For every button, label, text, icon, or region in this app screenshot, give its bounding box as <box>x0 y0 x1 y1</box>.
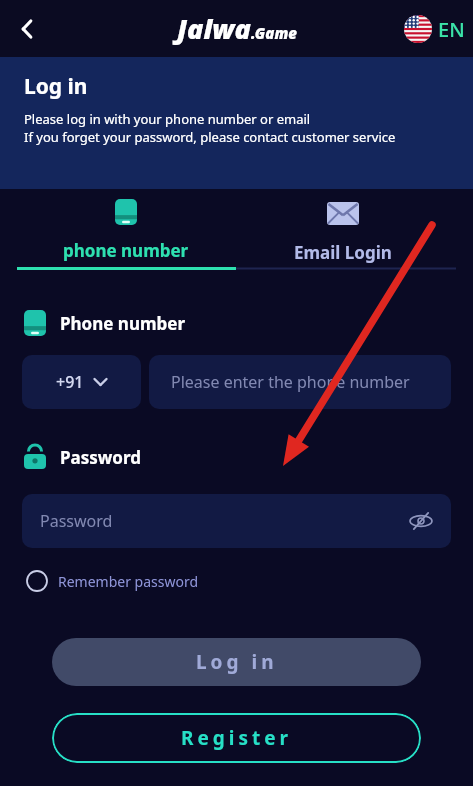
staticText: EN <box>438 16 465 43</box>
staticText: Password <box>60 446 141 469</box>
button[interactable]: Register <box>52 713 421 763</box>
staticText: If you forget your password, please cont… <box>24 128 396 146</box>
staticText: Remember password <box>58 572 199 591</box>
button[interactable]: Password <box>40 494 433 548</box>
staticText: Please log in with your phone number or … <box>24 110 311 128</box>
staticText: Please enter the phone number <box>171 371 410 393</box>
button[interactable]: Remember password <box>26 570 199 592</box>
button[interactable]: phone number <box>8 199 244 262</box>
staticText: phone number <box>63 239 189 262</box>
staticText: Phone number <box>60 312 186 335</box>
button[interactable]: Email Login <box>224 199 461 264</box>
button[interactable] <box>8 9 48 49</box>
staticText: Log in <box>24 72 88 101</box>
button[interactable]: EN <box>404 15 465 43</box>
staticText: .Game <box>251 23 297 43</box>
staticText: Email Login <box>294 241 392 264</box>
staticText: Jalwa <box>177 10 251 47</box>
staticText: Log in <box>196 649 278 675</box>
button[interactable]: Please enter the phone number <box>171 355 451 409</box>
staticText: Register <box>181 725 293 751</box>
staticText: +91 <box>56 371 84 393</box>
button[interactable]: Log in <box>52 638 421 686</box>
staticText: Password <box>40 510 409 532</box>
button[interactable]: +91 <box>22 355 141 409</box>
